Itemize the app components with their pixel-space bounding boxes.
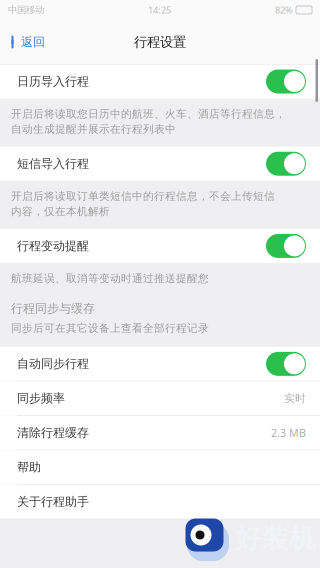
staticText: 14:25	[148, 4, 171, 16]
button[interactable]: 关于行程助手	[0, 485, 320, 519]
staticText: 内容，仅在本机解析	[11, 205, 110, 218]
staticText: 开启后将读取您日历中的航班、火车、酒店等行程信息，	[11, 107, 286, 121]
staticText: 同步后可在其它设备上查看全部行程记录	[11, 322, 209, 335]
button[interactable]: 行程变动提醒	[0, 229, 320, 263]
button[interactable]: 清除行程缓存	[0, 416, 320, 450]
staticText: 实时	[284, 392, 306, 405]
staticText: 行程同步与缓存	[11, 301, 95, 316]
button[interactable]: 帮助	[0, 450, 320, 484]
button[interactable]: 日历导入行程	[0, 64, 320, 98]
staticText: 短信导入行程	[17, 156, 89, 171]
staticText: 好装机	[235, 522, 316, 555]
staticText: 开启后将读取订单类短信中的行程信息，不会上传短信	[11, 190, 275, 203]
staticText: 自动生成提醒并展示在行程列表中	[11, 123, 176, 136]
staticText: 行程设置	[134, 34, 186, 50]
staticText: 82%	[275, 4, 293, 16]
staticText: 返回	[21, 35, 45, 49]
staticText: 帮助	[17, 460, 41, 475]
staticText: 行程变动提醒	[17, 238, 89, 253]
button[interactable]: 同步频率	[0, 381, 320, 415]
staticText: 同步频率	[17, 391, 65, 406]
staticText: 日历导入行程	[17, 74, 89, 89]
button[interactable]: Back	[0, 20, 45, 64]
staticText: 自动同步行程	[17, 356, 89, 371]
staticText: 2.3 MB	[271, 426, 306, 440]
staticText: 中国移动	[8, 4, 44, 16]
button[interactable]: 自动同步行程	[0, 347, 320, 381]
staticText: 关于行程助手	[17, 494, 89, 509]
staticText: 航班延误、取消等变动时通过推送提醒您	[11, 272, 209, 285]
button[interactable]: 短信导入行程	[0, 147, 320, 181]
staticText: 清除行程缓存	[17, 425, 89, 440]
